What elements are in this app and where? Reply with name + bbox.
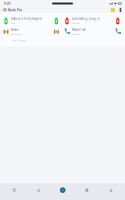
staticText: Text message [12,39,25,42]
button[interactable]: Insights [26,183,51,200]
button[interactable]: Profile [117,7,124,13]
button[interactable]: Battery is fully charged [0,15,61,26]
button[interactable]: Cards [75,183,99,200]
staticText: Battery is fully charged [11,17,42,21]
staticText: dismissed [11,32,21,36]
button[interactable]: Accounts [51,183,75,200]
staticText: US Bank Pro [3,8,22,12]
staticText: Missed call [72,28,86,32]
staticText: Low battery, plug in [72,17,100,21]
button[interactable]: Alarm [0,26,61,37]
button[interactable]: Rewards [109,7,117,13]
staticText: now [11,21,15,25]
staticText: 2m ago [72,21,79,25]
button[interactable]: Home [2,183,26,200]
staticText: 5m ago [72,32,79,36]
staticText: 9:41 [4,1,11,5]
button[interactable]: Missed call [61,26,125,37]
button[interactable]: More [99,183,123,200]
staticText: Alarm [11,28,18,32]
button[interactable]: Low battery, plug in [61,15,125,26]
